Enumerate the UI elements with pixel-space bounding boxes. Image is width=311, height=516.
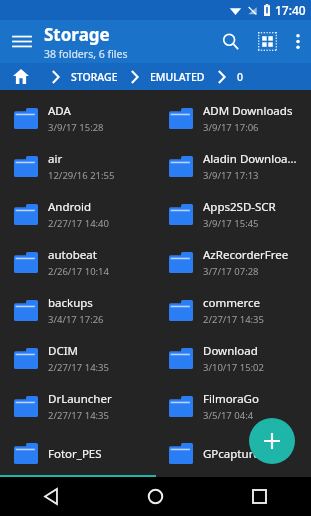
button[interactable]: autobeat: [0, 238, 155, 286]
button[interactable]: commerce: [155, 286, 311, 334]
button[interactable]: GPcapture: [155, 430, 311, 477]
button[interactable]: Switch to grid view: [249, 20, 285, 63]
staticText: 3/9/17 17:13: [203, 169, 259, 182]
button[interactable]: Search: [211, 20, 249, 63]
staticText: 17:40: [275, 2, 306, 18]
staticText: 3/9/17 15:28: [48, 121, 104, 134]
staticText: 38 folders, 6 files: [44, 47, 128, 61]
button[interactable]: 0: [234, 63, 247, 90]
staticText: GPcapture: [203, 446, 260, 462]
button[interactable]: Home: [0, 63, 42, 90]
staticText: EMULATED: [150, 70, 205, 84]
staticText: ADA: [48, 103, 71, 119]
staticText: FilmoraGo: [203, 391, 259, 407]
staticText: 2/27/17 14:35: [203, 313, 264, 326]
staticText: Aladin Downloa…: [203, 151, 297, 167]
button[interactable]: Download: [155, 334, 311, 382]
staticText: 3/10/17 15:02: [203, 361, 264, 374]
staticText: 3/5/17 04:4: [203, 409, 254, 422]
staticText: DCIM: [48, 343, 78, 359]
button[interactable]: Home: [103, 477, 207, 516]
staticText: 3/4/17 17:26: [48, 313, 104, 326]
staticText: air: [48, 151, 63, 167]
staticText: 2/27/17 14:35: [48, 361, 109, 374]
button[interactable]: backups: [0, 286, 155, 334]
button[interactable]: Fotor_PES: [0, 430, 155, 477]
staticText: Download: [203, 343, 258, 359]
button[interactable]: DrLauncher: [0, 382, 155, 430]
button[interactable]: Aladin Downloa…: [155, 142, 311, 190]
button[interactable]: More options: [285, 20, 311, 63]
button[interactable]: FilmoraGo: [155, 382, 311, 430]
staticText: 3/7/17 07:28: [203, 265, 259, 278]
staticText: STORAGE: [71, 70, 118, 84]
staticText: Fotor_PES: [48, 446, 102, 462]
button[interactable]: Android: [0, 190, 155, 238]
staticText: Storage: [44, 23, 110, 46]
staticText: backups: [48, 295, 93, 311]
button[interactable]: EMULATED: [147, 63, 208, 90]
button[interactable]: air: [0, 142, 155, 190]
button[interactable]: Apps2SD-SCR: [155, 190, 311, 238]
staticText: 3/9/17 15:45: [203, 217, 259, 230]
staticText: 0: [237, 70, 244, 84]
button[interactable]: ADM Downloads: [155, 94, 311, 142]
button[interactable]: ADA: [0, 94, 155, 142]
staticText: 12/29/16 21:55: [48, 169, 115, 182]
staticText: autobeat: [48, 247, 97, 263]
button[interactable]: STORAGE: [68, 63, 121, 90]
staticText: commerce: [203, 295, 260, 311]
staticText: 2/27/17 14:40: [48, 217, 109, 230]
staticText: ADM Downloads: [203, 103, 293, 119]
staticText: 3/9/17 17:06: [203, 121, 259, 134]
staticText: 2/27/17 14:35: [48, 409, 109, 422]
button[interactable]: Open navigation menu: [0, 20, 44, 63]
staticText: Android: [48, 199, 92, 215]
button[interactable]: Back: [0, 477, 103, 516]
staticText: 2/26/17 10:14: [48, 265, 109, 278]
button[interactable]: Add: [249, 418, 295, 464]
button[interactable]: Recent apps: [207, 477, 311, 516]
staticText: Apps2SD-SCR: [203, 199, 276, 215]
staticText: AzRecorderFree: [203, 247, 289, 263]
staticText: DrLauncher: [48, 391, 112, 407]
button[interactable]: AzRecorderFree: [155, 238, 311, 286]
button[interactable]: DCIM: [0, 334, 155, 382]
